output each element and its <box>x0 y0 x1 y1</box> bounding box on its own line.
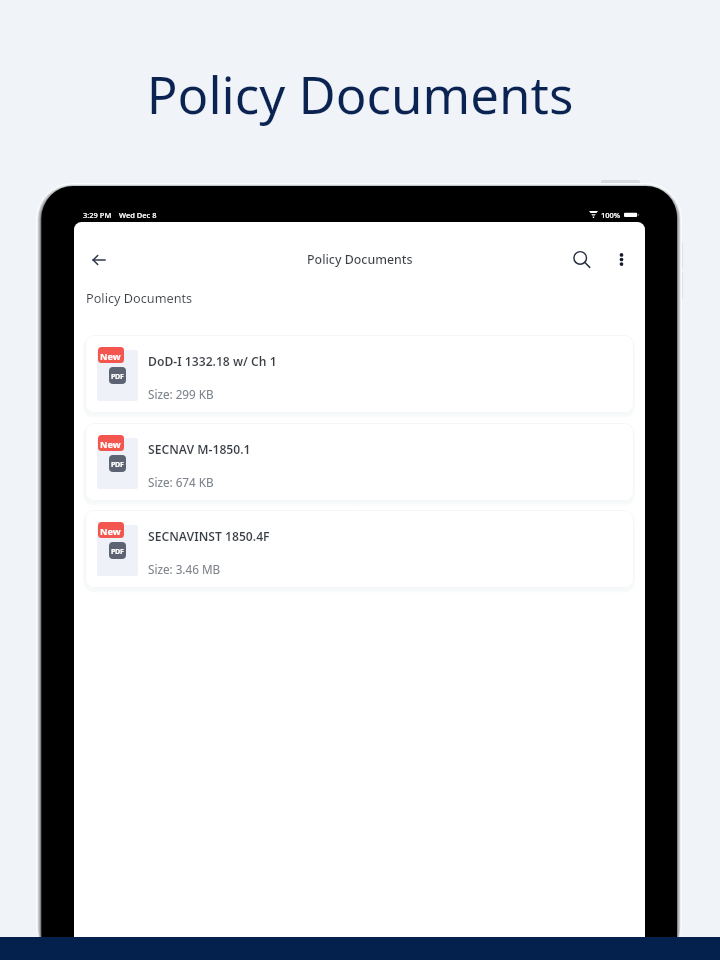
staticText: New <box>100 438 121 451</box>
staticText: PDF <box>111 371 124 381</box>
staticText: SECNAV M-1850.1 <box>148 441 251 458</box>
button[interactable]: PDF <box>85 335 634 413</box>
staticText: 3:29 PM <box>83 210 112 220</box>
button[interactable]: PDF <box>85 423 634 501</box>
staticText: 100% <box>601 210 621 220</box>
staticText: DoD-I 1332.18 w/ Ch 1 <box>148 353 277 370</box>
staticText: Policy Documents <box>307 251 413 268</box>
staticText: Policy Documents <box>86 289 193 306</box>
button[interactable]: More options <box>606 244 636 274</box>
staticText: PDF <box>111 459 124 469</box>
staticText: Wed Dec 8 <box>119 210 157 220</box>
button[interactable]: Back <box>85 246 112 273</box>
staticText: New <box>100 350 121 363</box>
staticText: SECNAVINST 1850.4F <box>148 528 270 545</box>
button[interactable]: PDF <box>85 510 634 588</box>
button[interactable]: Search <box>567 245 597 275</box>
staticText: Size: 299 KB <box>148 386 214 402</box>
staticText: PDF <box>111 546 124 556</box>
staticText: New <box>100 525 121 538</box>
staticText: Policy Documents <box>0 59 720 128</box>
staticText: Size: 674 KB <box>148 474 214 490</box>
staticText: Size: 3.46 MB <box>148 561 221 577</box>
